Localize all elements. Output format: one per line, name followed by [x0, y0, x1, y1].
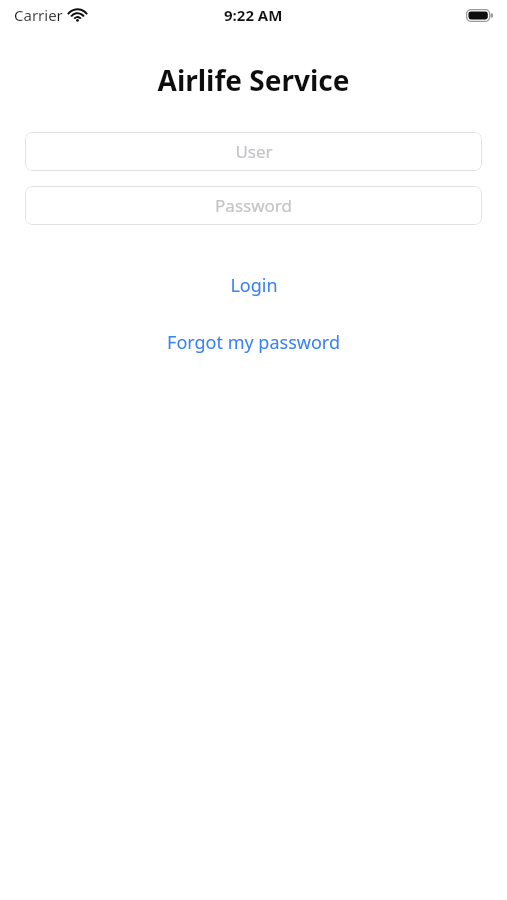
staticText: Password: [215, 194, 292, 217]
staticText: Login: [230, 273, 278, 298]
button[interactable]: Forgot my password: [0, 326, 507, 359]
staticText: 9:22 AM: [224, 5, 283, 25]
button[interactable]: User: [25, 132, 482, 171]
staticText: Forgot my password: [167, 330, 340, 355]
other: Battery full: [466, 9, 493, 22]
staticText: Airlife Service: [0, 61, 507, 99]
button[interactable]: Password: [25, 186, 482, 225]
staticText: User: [235, 140, 273, 163]
staticText: Carrier: [14, 5, 63, 25]
button[interactable]: Login: [0, 269, 507, 302]
other: Wi-Fi signal: [69, 9, 86, 22]
